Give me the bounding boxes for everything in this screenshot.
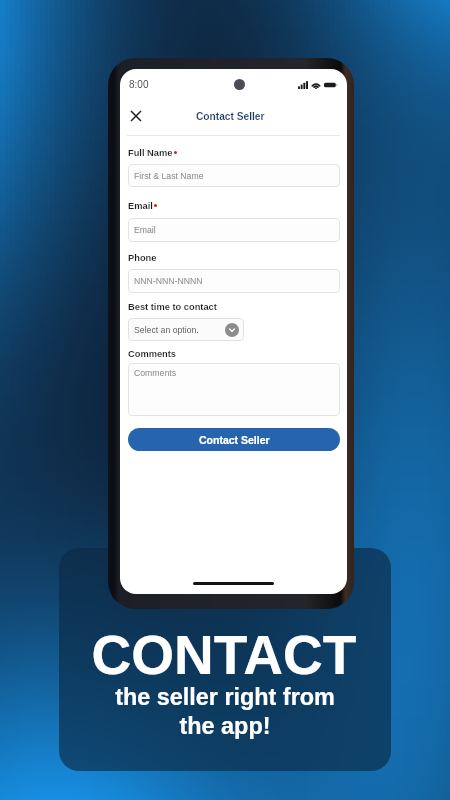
button[interactable]: Email xyxy=(128,218,340,242)
staticText: Best time to contact xyxy=(128,302,217,312)
staticText: CONTACT xyxy=(0,624,449,685)
staticText: Comments xyxy=(128,349,177,359)
staticText: First & Last Name xyxy=(134,171,204,181)
staticText: Phone xyxy=(128,253,157,263)
staticText: 8:00 xyxy=(129,79,149,90)
staticText: NNN-NNN-NNNN xyxy=(134,276,203,286)
button[interactable]: Select an option. xyxy=(128,318,244,341)
staticText: Email xyxy=(128,201,153,211)
button[interactable]: Comments xyxy=(128,363,340,416)
staticText: Select an option. xyxy=(134,325,199,335)
button[interactable]: NNN-NNN-NNNN xyxy=(128,269,340,293)
staticText: Contact Seller xyxy=(196,111,265,122)
staticText: Full Name xyxy=(128,148,173,158)
button[interactable]: First & Last Name xyxy=(128,164,340,187)
staticText: the seller right from the app! xyxy=(0,684,450,739)
staticText: Contact Seller xyxy=(199,434,270,446)
staticText: Comments xyxy=(134,368,176,378)
button[interactable]: Close xyxy=(125,105,147,127)
staticText: Email xyxy=(134,225,156,235)
button[interactable]: Contact Seller xyxy=(128,428,340,451)
